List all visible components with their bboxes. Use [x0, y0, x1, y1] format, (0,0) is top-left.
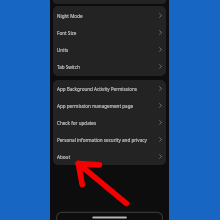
button[interactable]: Tab Switch: [53, 58, 166, 75]
button[interactable]: Units: [53, 41, 166, 58]
button[interactable]: About: [53, 148, 166, 165]
staticText: App permission management page: [57, 103, 134, 109]
button[interactable]: App Background Activity Permissions: [53, 80, 166, 97]
staticText: Tab Switch: [57, 64, 80, 70]
staticText: App Background Activity Permissions: [57, 86, 137, 92]
button[interactable]: Night Mode: [53, 7, 166, 24]
button[interactable]: App permission management page: [53, 97, 166, 114]
staticText: About: [57, 154, 71, 160]
staticText: Units: [57, 47, 69, 53]
staticText: Font Size: [57, 30, 77, 36]
button[interactable]: Font Size: [53, 24, 166, 41]
button[interactable]: Personal information security and privac…: [53, 131, 166, 148]
staticText: Night Mode: [57, 13, 83, 19]
staticText: Personal information security and privac…: [57, 137, 147, 143]
staticText: Check for updates: [57, 120, 97, 126]
button[interactable]: Check for updates: [53, 114, 166, 131]
